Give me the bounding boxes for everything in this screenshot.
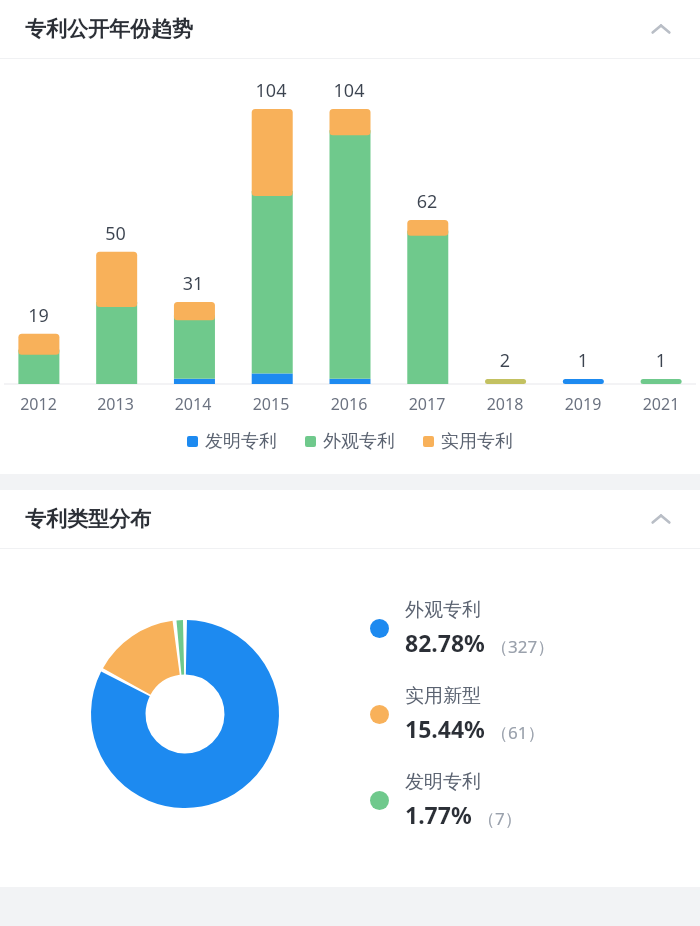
staticText: （61）	[491, 721, 545, 744]
button[interactable]: 发明专利	[187, 426, 277, 457]
staticText: 2013	[77, 393, 154, 414]
staticText: 外观专利	[405, 598, 481, 622]
staticText: 62	[388, 189, 466, 214]
staticText: 2016	[310, 393, 388, 414]
staticText: 专利公开年份趋势	[25, 16, 193, 42]
staticText: 104	[232, 78, 310, 103]
button[interactable]: 发明专利	[370, 770, 686, 830]
staticText: 31	[154, 271, 232, 296]
staticText: 50	[77, 221, 154, 246]
staticText: 1.77%	[405, 799, 472, 830]
staticText: 发明专利	[405, 770, 481, 794]
button[interactable]: 实用专利	[423, 426, 513, 457]
button[interactable]: 专利类型分布	[0, 490, 700, 548]
button[interactable]: 实用新型	[370, 684, 686, 744]
staticText: 15.44%	[405, 713, 485, 744]
staticText: 82.78%	[405, 627, 485, 658]
staticText: 2019	[544, 393, 622, 414]
staticText: 实用专利	[441, 430, 513, 453]
staticText: 2014	[154, 393, 232, 414]
staticText: 实用新型	[405, 684, 481, 708]
button[interactable]: 专利公开年份趋势	[0, 0, 700, 58]
staticText: 2015	[232, 393, 310, 414]
staticText: 1	[544, 348, 622, 373]
staticText: （327）	[491, 635, 555, 658]
staticText: 19	[0, 303, 77, 328]
staticText: 104	[310, 78, 388, 103]
other: Collapse section	[646, 504, 676, 534]
staticText: 2018	[466, 393, 544, 414]
staticText: 专利类型分布	[25, 506, 151, 532]
staticText: 2	[466, 348, 544, 373]
button[interactable]: 外观专利	[305, 426, 395, 457]
staticText: （7）	[478, 807, 522, 830]
staticText: 2012	[0, 393, 77, 414]
other: Collapse section	[646, 14, 676, 44]
staticText: 外观专利	[323, 430, 395, 453]
staticText: 发明专利	[205, 430, 277, 453]
staticText: 2017	[388, 393, 466, 414]
staticText: 2021	[622, 393, 700, 414]
button[interactable]: 外观专利	[370, 598, 686, 658]
staticText: 1	[622, 348, 700, 373]
